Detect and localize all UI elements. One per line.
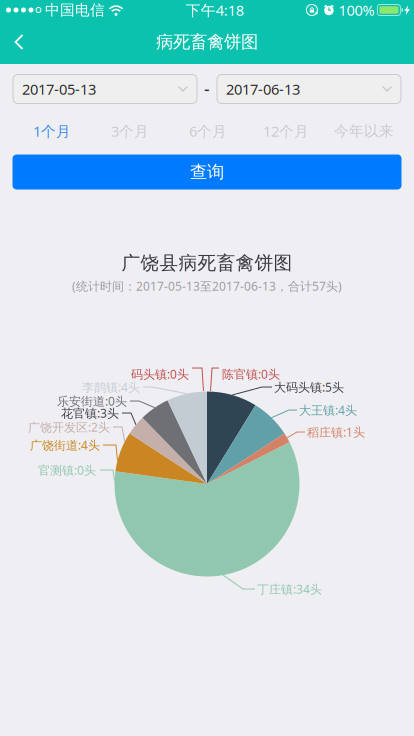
staticText: 12个月 bbox=[263, 121, 309, 141]
staticText: 大王镇:4头 bbox=[299, 402, 357, 418]
staticText: 广饶开发区:2头 bbox=[28, 419, 110, 435]
staticText: 今年以来 bbox=[334, 122, 394, 140]
staticText: (统计时间：2017-05-13至2017-06-13，合计57头) bbox=[72, 278, 342, 294]
staticText: 广饶县病死畜禽饼图 bbox=[121, 251, 292, 274]
staticText: 码头镇:0头 bbox=[131, 366, 189, 382]
staticText: 1个月 bbox=[33, 121, 71, 141]
button[interactable]: 3个月 bbox=[91, 120, 169, 142]
button[interactable]: 今年以来 bbox=[325, 120, 403, 142]
staticText: - bbox=[204, 77, 210, 100]
staticText: 陈官镇:0头 bbox=[222, 366, 280, 382]
staticText: 李鹊镇:4头 bbox=[82, 379, 140, 395]
staticText: 6个月 bbox=[189, 121, 227, 141]
staticText: 大码头镇:5头 bbox=[274, 379, 344, 395]
staticText: 病死畜禽饼图 bbox=[156, 31, 258, 53]
staticText: 查询 bbox=[190, 161, 224, 183]
button[interactable]: 2017-06-13 bbox=[217, 74, 401, 103]
button[interactable]: 返回 bbox=[0, 20, 38, 64]
staticText: 官测镇:0头 bbox=[38, 462, 96, 478]
staticText: 花官镇:3头 bbox=[61, 405, 119, 421]
staticText: 丁庄镇:34头 bbox=[257, 581, 322, 597]
button[interactable]: 12个月 bbox=[247, 120, 325, 142]
button[interactable]: 1个月 bbox=[13, 120, 91, 142]
staticText: 3个月 bbox=[111, 121, 149, 141]
staticText: 下午4:18 bbox=[186, 0, 244, 20]
button[interactable]: 2017-05-13 bbox=[13, 74, 197, 103]
staticText: 中国电信 bbox=[45, 1, 105, 19]
button[interactable]: 查询 bbox=[12, 154, 401, 189]
button[interactable]: 6个月 bbox=[169, 120, 247, 142]
staticText: 广饶街道:4头 bbox=[30, 437, 100, 453]
staticText: 稻庄镇:1头 bbox=[307, 424, 365, 440]
staticText: 2017-06-13 bbox=[226, 79, 300, 99]
staticText: 100% bbox=[338, 0, 374, 20]
staticText: 2017-05-13 bbox=[22, 79, 96, 99]
staticText: 乐安街道:0头 bbox=[57, 393, 127, 409]
